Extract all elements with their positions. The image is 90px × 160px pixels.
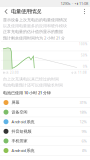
button[interactable]: Android 系统 <box>0 117 90 127</box>
staticText: Android 系统 <box>11 148 34 153</box>
staticText: 9% <box>81 129 86 134</box>
button[interactable]: 抖音短视频 <box>0 127 90 136</box>
button[interactable]: 屏幕 <box>0 98 90 107</box>
staticText: 屏幕 <box>11 100 19 105</box>
staticText: 电池已使用 10 小时 21 分钟 <box>3 90 51 95</box>
staticText: 4% <box>81 148 86 153</box>
staticText: 6% <box>81 138 86 144</box>
staticText: 11:08 <box>79 1 88 6</box>
staticText: 昨天 23:00 <box>3 71 19 75</box>
staticText: 自上次充满电以来已经过的时间 <box>3 77 59 81</box>
staticText: 显示设备上次充电后的电量使用情况 <box>3 17 67 22</box>
staticText: 电量使用情况 <box>11 8 41 15</box>
button[interactable]: 手机管家 <box>0 136 90 146</box>
staticText: 31% <box>79 100 86 105</box>
staticText: 正常充电量的估计值所显示的数据 <box>3 29 63 34</box>
staticText: 预计剩余使用时间约为 2 小时 21 分 <box>3 35 65 40</box>
staticText: 以及使用电量最多的应用和硬件模块 <box>3 23 67 28</box>
staticText: 今天 11:08 <box>71 71 87 75</box>
staticText: 电池电量预计还可以使用较长时间 <box>3 83 63 88</box>
staticText: 50% <box>81 54 87 57</box>
button[interactable]: Back <box>2 7 10 16</box>
staticText: ◦ ▾ ▮ <box>72 2 78 5</box>
staticText: 1290s <box>61 1 71 6</box>
staticText: 100% <box>79 43 87 46</box>
staticText: 0% <box>83 65 87 68</box>
button[interactable]: Android 系统 <box>0 146 90 155</box>
staticText: Android 系统 <box>11 119 34 124</box>
staticText: 手机管家 <box>11 138 27 143</box>
staticText: 18% <box>79 109 86 115</box>
staticText: 设备空闲 <box>11 110 27 115</box>
button[interactable]: More options <box>81 7 88 16</box>
staticText: 抖音短视频 <box>11 129 31 134</box>
staticText: 12% <box>79 119 86 124</box>
button[interactable]: 设备空闲 <box>0 107 90 117</box>
